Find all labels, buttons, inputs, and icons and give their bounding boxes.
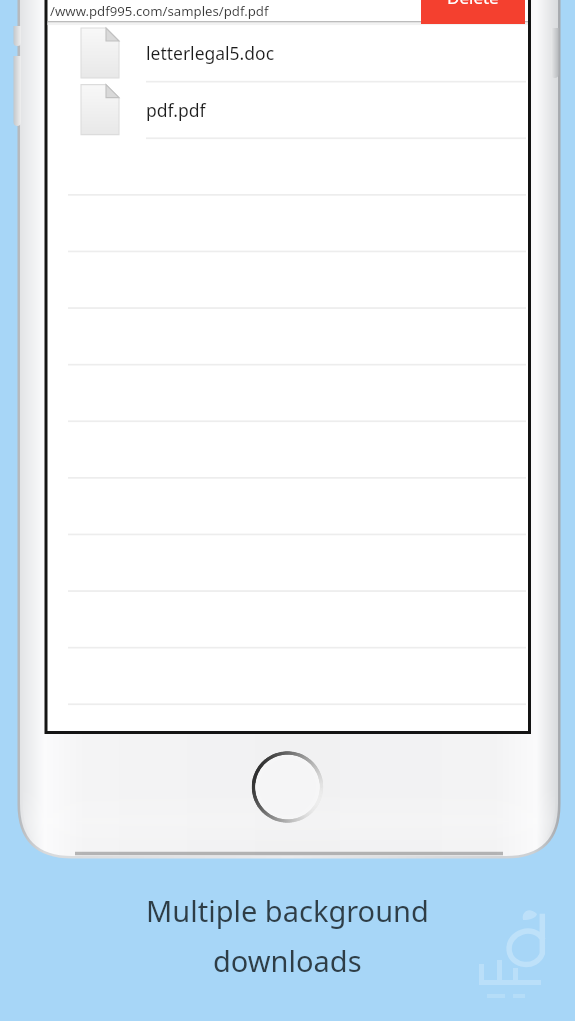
button[interactable] [48, 25, 529, 82]
button[interactable] [48, 82, 529, 139]
button[interactable]: Home [253, 752, 322, 821]
button[interactable]: Delete [421, 0, 525, 24]
